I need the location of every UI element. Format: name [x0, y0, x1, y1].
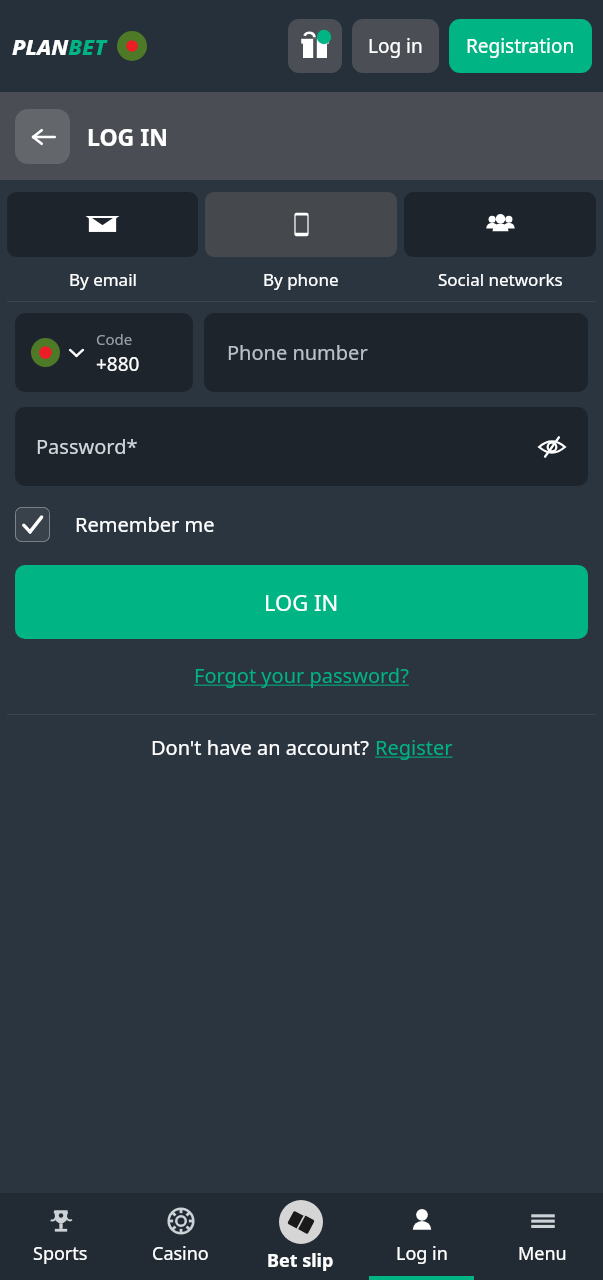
staticText: Sports [33, 1241, 88, 1266]
button[interactable]: By email [7, 192, 198, 291]
button[interactable]: LOG IN [15, 565, 588, 639]
button[interactable]: Code [15, 313, 193, 392]
staticText: Casino [152, 1241, 209, 1266]
button[interactable]: Back [15, 109, 70, 164]
button[interactable]: Sports [0, 1193, 120, 1280]
button[interactable]: Log in [352, 19, 439, 73]
staticText: Remember me [75, 511, 215, 538]
button[interactable]: Registration [449, 19, 592, 73]
staticText: LOG IN [264, 587, 339, 617]
staticText: Register [375, 734, 453, 761]
button[interactable]: Bonuses [288, 19, 342, 73]
button[interactable]: Bet slip [240, 1193, 361, 1280]
staticText: Forgot your password? [194, 662, 409, 689]
staticText: LOG IN [87, 121, 168, 152]
button[interactable]: By phone [205, 192, 397, 291]
button[interactable]: Show password [530, 425, 574, 469]
staticText: Bet slip [267, 1248, 334, 1273]
button[interactable]: Menu [482, 1193, 603, 1280]
staticText: PLANBET [12, 31, 107, 61]
button[interactable]: Log in [361, 1193, 482, 1280]
staticText: Log in [396, 1241, 448, 1266]
staticText: By phone [263, 268, 339, 291]
staticText: Code [96, 329, 133, 349]
button[interactable]: Social networks [404, 192, 596, 291]
staticText: Password* [36, 433, 138, 460]
button[interactable]: Phone number [204, 313, 588, 392]
button[interactable]: Remember me [15, 507, 215, 542]
staticText: By email [69, 268, 137, 291]
staticText: Don't have an account? [151, 734, 375, 761]
button[interactable]: Register [375, 734, 453, 761]
button[interactable]: Forgot your password? [188, 656, 415, 695]
staticText: +880 [96, 351, 140, 377]
staticText: Phone number [227, 339, 368, 366]
button[interactable]: Casino [120, 1193, 240, 1280]
button[interactable]: PLANBET [12, 31, 147, 61]
staticText: Menu [518, 1241, 567, 1266]
button[interactable]: Password* [15, 407, 588, 486]
staticText: Log in [368, 33, 423, 59]
staticText: Registration [466, 33, 575, 59]
staticText: Social networks [438, 268, 563, 291]
